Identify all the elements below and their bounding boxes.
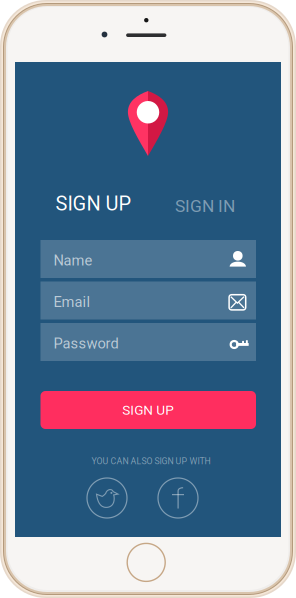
button[interactable]: Name (40, 240, 256, 278)
staticText: SIGN IN (175, 196, 235, 216)
button[interactable]: SIGN UP (55, 192, 131, 215)
button[interactable]: Password (40, 323, 256, 361)
staticText: Password (53, 335, 118, 352)
staticText: SIGN UP (122, 402, 174, 418)
staticText: SIGN UP (55, 192, 131, 215)
staticText: YOU CAN ALSO SIGN UP WITH (91, 456, 210, 466)
button[interactable]: Sign up with Facebook (158, 478, 198, 518)
button[interactable]: Sign up with Twitter (87, 478, 127, 518)
button[interactable]: Email (40, 281, 256, 319)
staticText: Email (53, 293, 90, 311)
button[interactable]: SIGN IN (175, 196, 235, 216)
staticText: Name (53, 252, 92, 269)
button[interactable]: SIGN UP (40, 391, 256, 429)
